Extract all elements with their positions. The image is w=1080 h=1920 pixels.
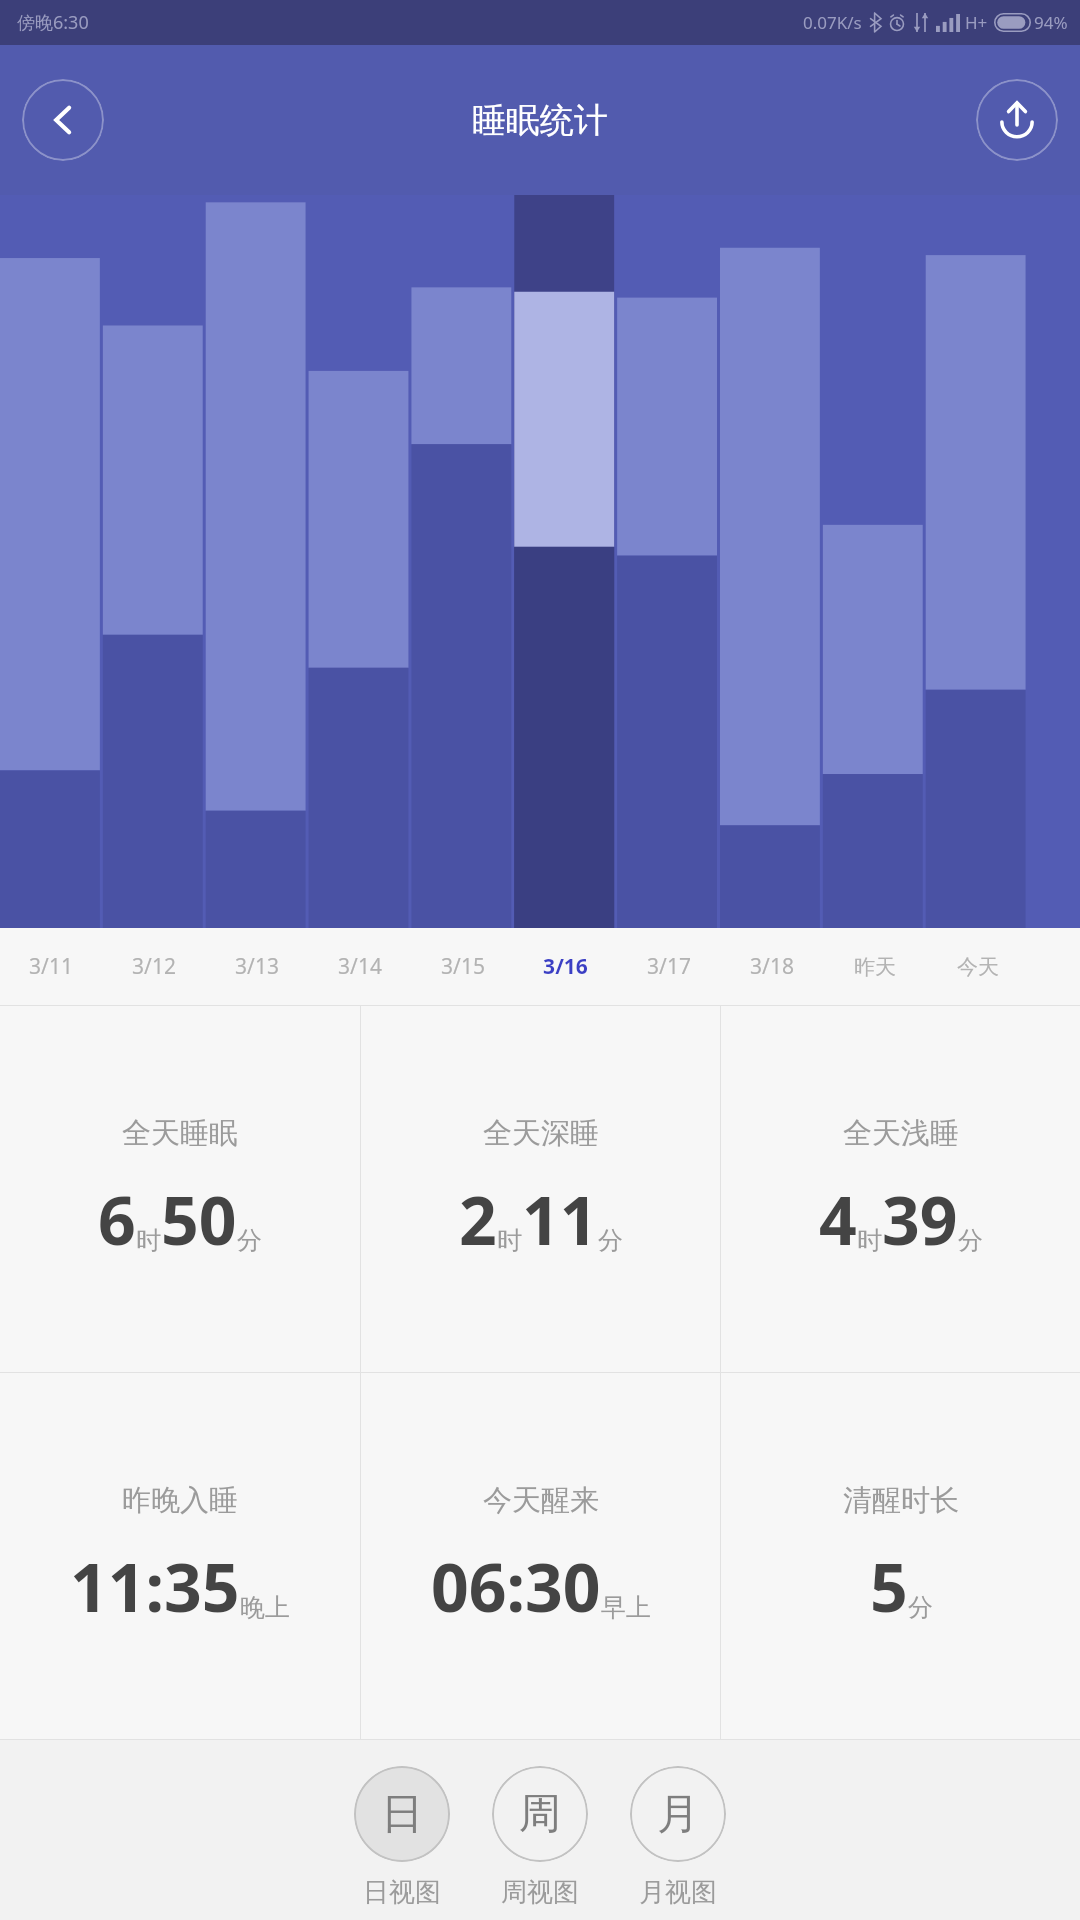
staticText: 3/12 (132, 952, 176, 981)
button[interactable]: 全天深睡 (361, 1006, 720, 1372)
staticText: 分 (958, 1225, 983, 1256)
button[interactable]: 周 (492, 1766, 588, 1909)
staticText: 3/18 (750, 952, 794, 981)
button[interactable]: 3/17 (617, 928, 720, 1005)
staticText: 早上 (601, 1592, 651, 1623)
staticText: 3/14 (338, 952, 382, 981)
staticText: 时 (857, 1225, 882, 1256)
staticText: 分 (908, 1592, 933, 1623)
staticText: 39 (882, 1174, 958, 1264)
staticText: 0.07K/s (803, 11, 862, 34)
button[interactable]: 今天醒来 (361, 1373, 720, 1739)
staticText: 分 (598, 1225, 623, 1256)
staticText: 94% (1034, 11, 1068, 34)
staticText: 06:30 (431, 1541, 601, 1631)
button[interactable]: 返回 (22, 79, 104, 161)
staticText: 月视图 (639, 1876, 717, 1909)
staticText: H+ (965, 11, 988, 34)
staticText: 傍晚6:30 (17, 10, 89, 35)
button[interactable]: 昨天 (823, 928, 926, 1005)
staticText: 周视图 (501, 1876, 579, 1909)
button[interactable]: 日 (354, 1766, 450, 1909)
staticText: 今天 (957, 954, 999, 980)
button[interactable]: 3/16 (514, 928, 617, 1005)
button[interactable]: 3/18 (720, 928, 823, 1005)
button[interactable]: 昨晚入睡 (0, 1373, 360, 1739)
button[interactable]: 3/15 (411, 928, 514, 1005)
button[interactable]: 全天睡眠 (0, 1006, 360, 1372)
staticText: 晚上 (240, 1592, 290, 1623)
staticText: 全天浅睡 (843, 1115, 959, 1152)
staticText: 3/13 (235, 952, 279, 981)
button[interactable]: 清醒时长 (721, 1373, 1080, 1739)
button[interactable]: 月 (630, 1766, 726, 1909)
staticText: 日 (381, 1788, 423, 1841)
staticText: 3/11 (29, 952, 73, 981)
button[interactable]: 3/14 (308, 928, 411, 1005)
staticText: 4 (819, 1174, 857, 1264)
staticText: 3/17 (647, 952, 691, 981)
staticText: 睡眠统计 (472, 99, 608, 142)
button[interactable]: 全天浅睡 (721, 1006, 1080, 1372)
staticText: 清醒时长 (843, 1482, 959, 1519)
staticText: 11 (522, 1174, 598, 1264)
staticText: 昨天 (854, 954, 896, 980)
staticText: 昨晚入睡 (122, 1482, 238, 1519)
staticText: 全天深睡 (483, 1115, 599, 1152)
staticText: 日视图 (363, 1876, 441, 1909)
staticText: 2 (459, 1174, 497, 1264)
staticText: 50 (161, 1174, 237, 1264)
staticText: 今天醒来 (483, 1482, 599, 1519)
staticText: 全天睡眠 (122, 1115, 238, 1152)
button[interactable]: 今天 (926, 928, 1029, 1005)
staticText: 分 (237, 1225, 262, 1256)
button[interactable]: 3/11 (0, 928, 102, 1005)
button[interactable]: 3/12 (102, 928, 205, 1005)
staticText: 时 (136, 1225, 161, 1256)
staticText: 月 (657, 1788, 699, 1841)
staticText: 时 (497, 1225, 522, 1256)
staticText: 3/16 (543, 952, 588, 981)
staticText: 11:35 (70, 1541, 240, 1631)
button[interactable]: 分享 (976, 79, 1058, 161)
staticText: 3/15 (441, 952, 485, 981)
staticText: 5 (870, 1541, 908, 1631)
staticText: 周 (519, 1788, 561, 1841)
staticText: 6 (98, 1174, 136, 1264)
button[interactable]: 3/13 (205, 928, 308, 1005)
